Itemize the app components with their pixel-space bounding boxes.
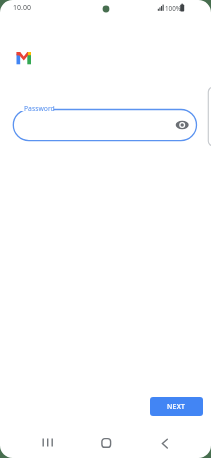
staticText: 100% — [165, 4, 182, 13]
button[interactable]: NEXT — [150, 397, 203, 416]
button[interactable] — [172, 115, 192, 135]
button[interactable] — [13, 109, 197, 141]
button[interactable] — [88, 430, 124, 456]
button[interactable] — [30, 430, 66, 456]
button[interactable] — [147, 430, 183, 456]
staticText: 10.00 — [13, 3, 31, 13]
staticText: Password — [24, 104, 55, 113]
staticText: NEXT — [167, 402, 186, 411]
